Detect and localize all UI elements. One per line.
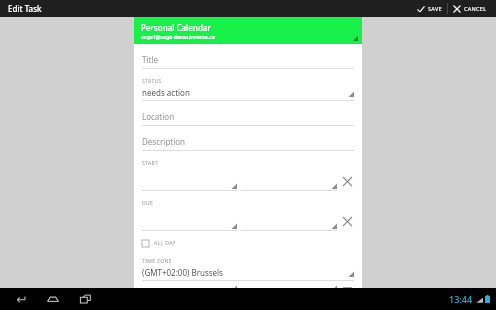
staticText: Location [142, 111, 175, 122]
staticText: (GMT+02:00) Brussels [142, 267, 347, 278]
button[interactable] [241, 182, 337, 191]
button[interactable] [142, 222, 237, 231]
button[interactable]: Recent apps [76, 290, 94, 308]
button[interactable]: Title [142, 44, 354, 69]
button[interactable]: Clear [340, 214, 354, 228]
button[interactable]: Personal Calendar [134, 17, 362, 44]
button[interactable]: Clear [340, 174, 354, 188]
staticText: CANCEL [464, 5, 487, 12]
staticText: TIME ZONE [142, 258, 172, 265]
button[interactable]: Location [142, 101, 354, 126]
staticText: Title [142, 54, 158, 65]
staticText: Personal Calendar [141, 22, 211, 33]
button[interactable]: STATUS [142, 69, 354, 101]
staticText: DUE [142, 200, 154, 207]
button[interactable] [241, 222, 337, 231]
button[interactable] [142, 182, 237, 191]
staticText: Description [142, 136, 186, 147]
button[interactable]: Description [142, 126, 354, 151]
staticText: sogo1@sogo-demo.inverse.ca [141, 34, 352, 41]
button[interactable]: TIME ZONE [142, 247, 354, 281]
button[interactable]: CANCEL [448, 0, 492, 17]
button[interactable]: Back [12, 290, 30, 308]
button[interactable]: Home [44, 290, 62, 308]
staticText: SAVE [428, 5, 442, 12]
staticText: START [142, 160, 159, 167]
button[interactable]: ALL DAY [142, 231, 354, 247]
staticText: 13:44 [449, 293, 473, 305]
staticText: Edit Task [8, 3, 42, 14]
staticText: ALL DAY [154, 240, 176, 247]
staticText: needs action [142, 87, 347, 98]
staticText: STATUS [142, 78, 162, 85]
button[interactable]: SAVE [412, 0, 447, 17]
